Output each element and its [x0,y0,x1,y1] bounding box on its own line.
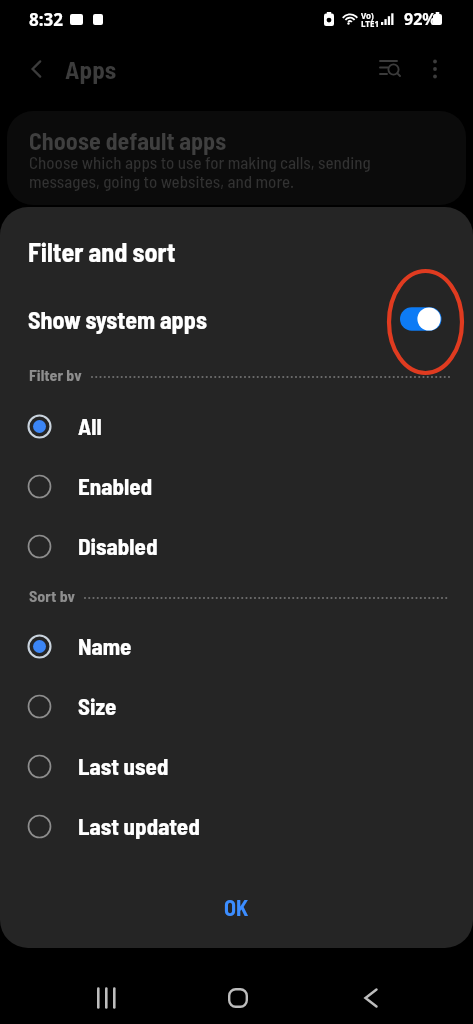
button[interactable]: Enabled [0,463,473,509]
staticText: Name [78,632,132,660]
button[interactable]: All [0,403,473,449]
staticText: Filter by [29,365,82,381]
staticText: Show system apps [28,305,207,334]
button[interactable]: Choose default apps [7,111,466,205]
button[interactable]: Size [0,683,473,729]
staticText: Last updated [78,812,200,840]
button[interactable]: Disabled [0,523,473,569]
button[interactable]: Search [367,45,415,93]
staticText: Disabled [78,532,158,560]
staticText: 92% [404,8,437,30]
staticText: 8:32 [29,8,63,31]
staticText: All [78,412,102,440]
button[interactable]: Show system apps [0,292,473,346]
staticText: Vo) [361,10,374,21]
button[interactable]: More options [411,45,459,93]
staticText: Apps [65,54,117,84]
button[interactable]: Name [0,623,473,669]
button[interactable]: Show system apps [400,305,442,333]
staticText: Last used [78,752,169,780]
button[interactable]: Back [13,45,61,93]
button[interactable]: Recent apps [77,969,135,1024]
staticText: LTE1 [361,18,379,29]
button[interactable]: Home [209,969,267,1024]
button[interactable]: Last used [0,743,473,789]
staticText: Choose default apps [29,126,227,155]
staticText: Enabled [78,472,153,500]
staticText: Choose which apps to use for making call… [29,152,371,191]
button[interactable]: OK [0,876,473,938]
staticText: Sort by [29,586,75,602]
button[interactable]: Last updated [0,803,473,849]
staticText: OK [224,894,249,920]
staticText: Filter and sort [28,236,176,267]
button[interactable]: Back [342,969,400,1024]
staticText: Size [78,692,117,720]
